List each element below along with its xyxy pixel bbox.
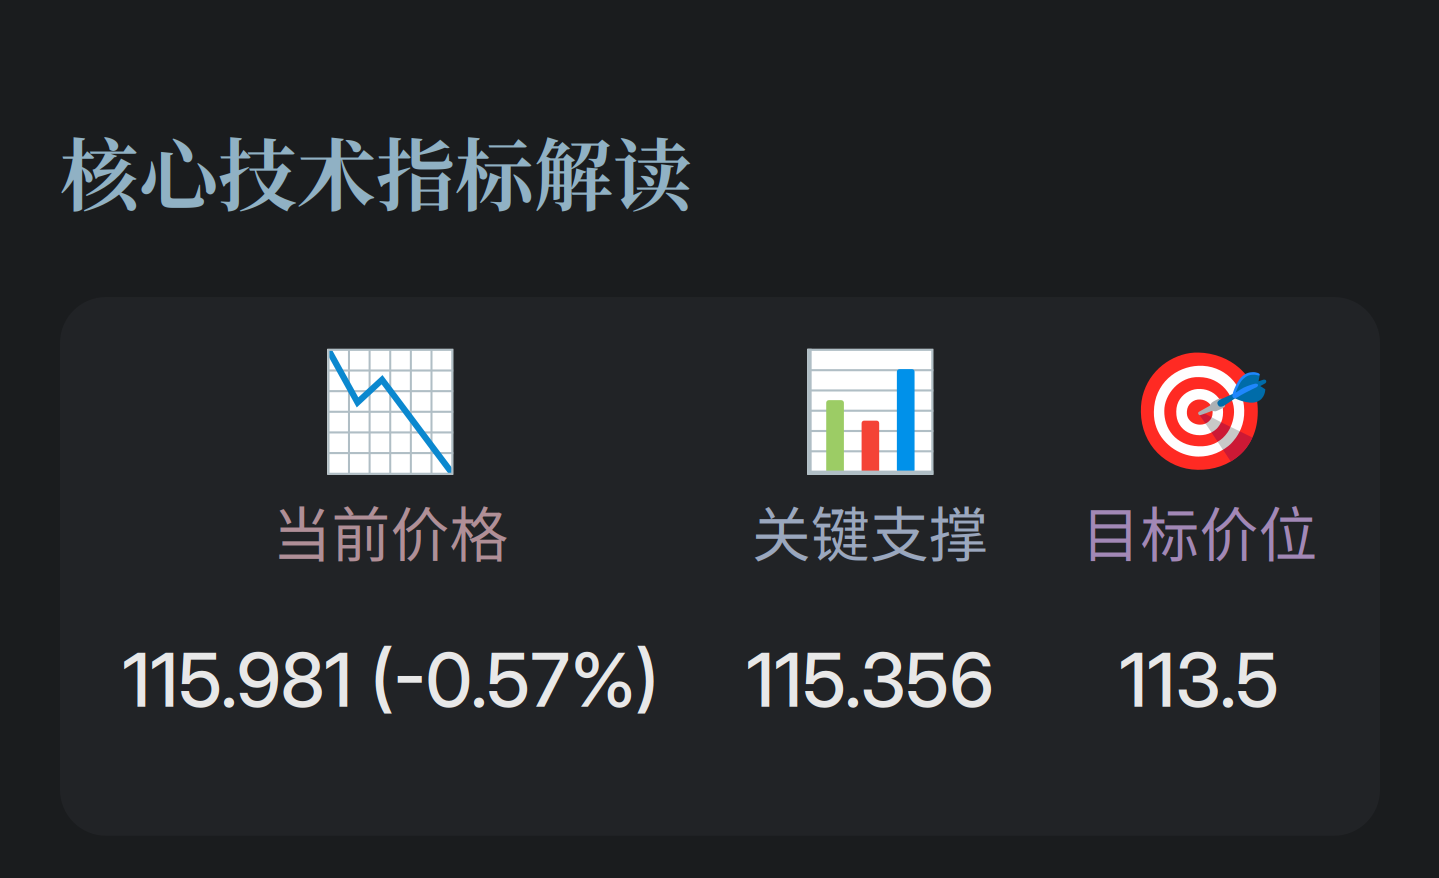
staticText: 🎯	[1128, 345, 1271, 479]
staticText: 113.5	[1119, 634, 1279, 725]
staticText: 目标价位	[1081, 488, 1317, 573]
staticText: 当前价格	[272, 488, 508, 573]
staticText: 📉	[319, 345, 462, 479]
button[interactable]: 关键支撑 115.356	[746, 345, 993, 725]
button[interactable]: 目标价位 113.5	[1081, 345, 1317, 725]
staticText: 115.981 (-0.57%)	[122, 634, 658, 725]
staticText: 115.356	[746, 634, 993, 725]
staticText: 核心技术指标解读	[60, 114, 692, 227]
staticText: 📊	[798, 345, 941, 479]
button[interactable]: 当前价格 115.981 下跌 0.57%	[122, 345, 658, 725]
staticText: 关键支撑	[752, 488, 988, 573]
